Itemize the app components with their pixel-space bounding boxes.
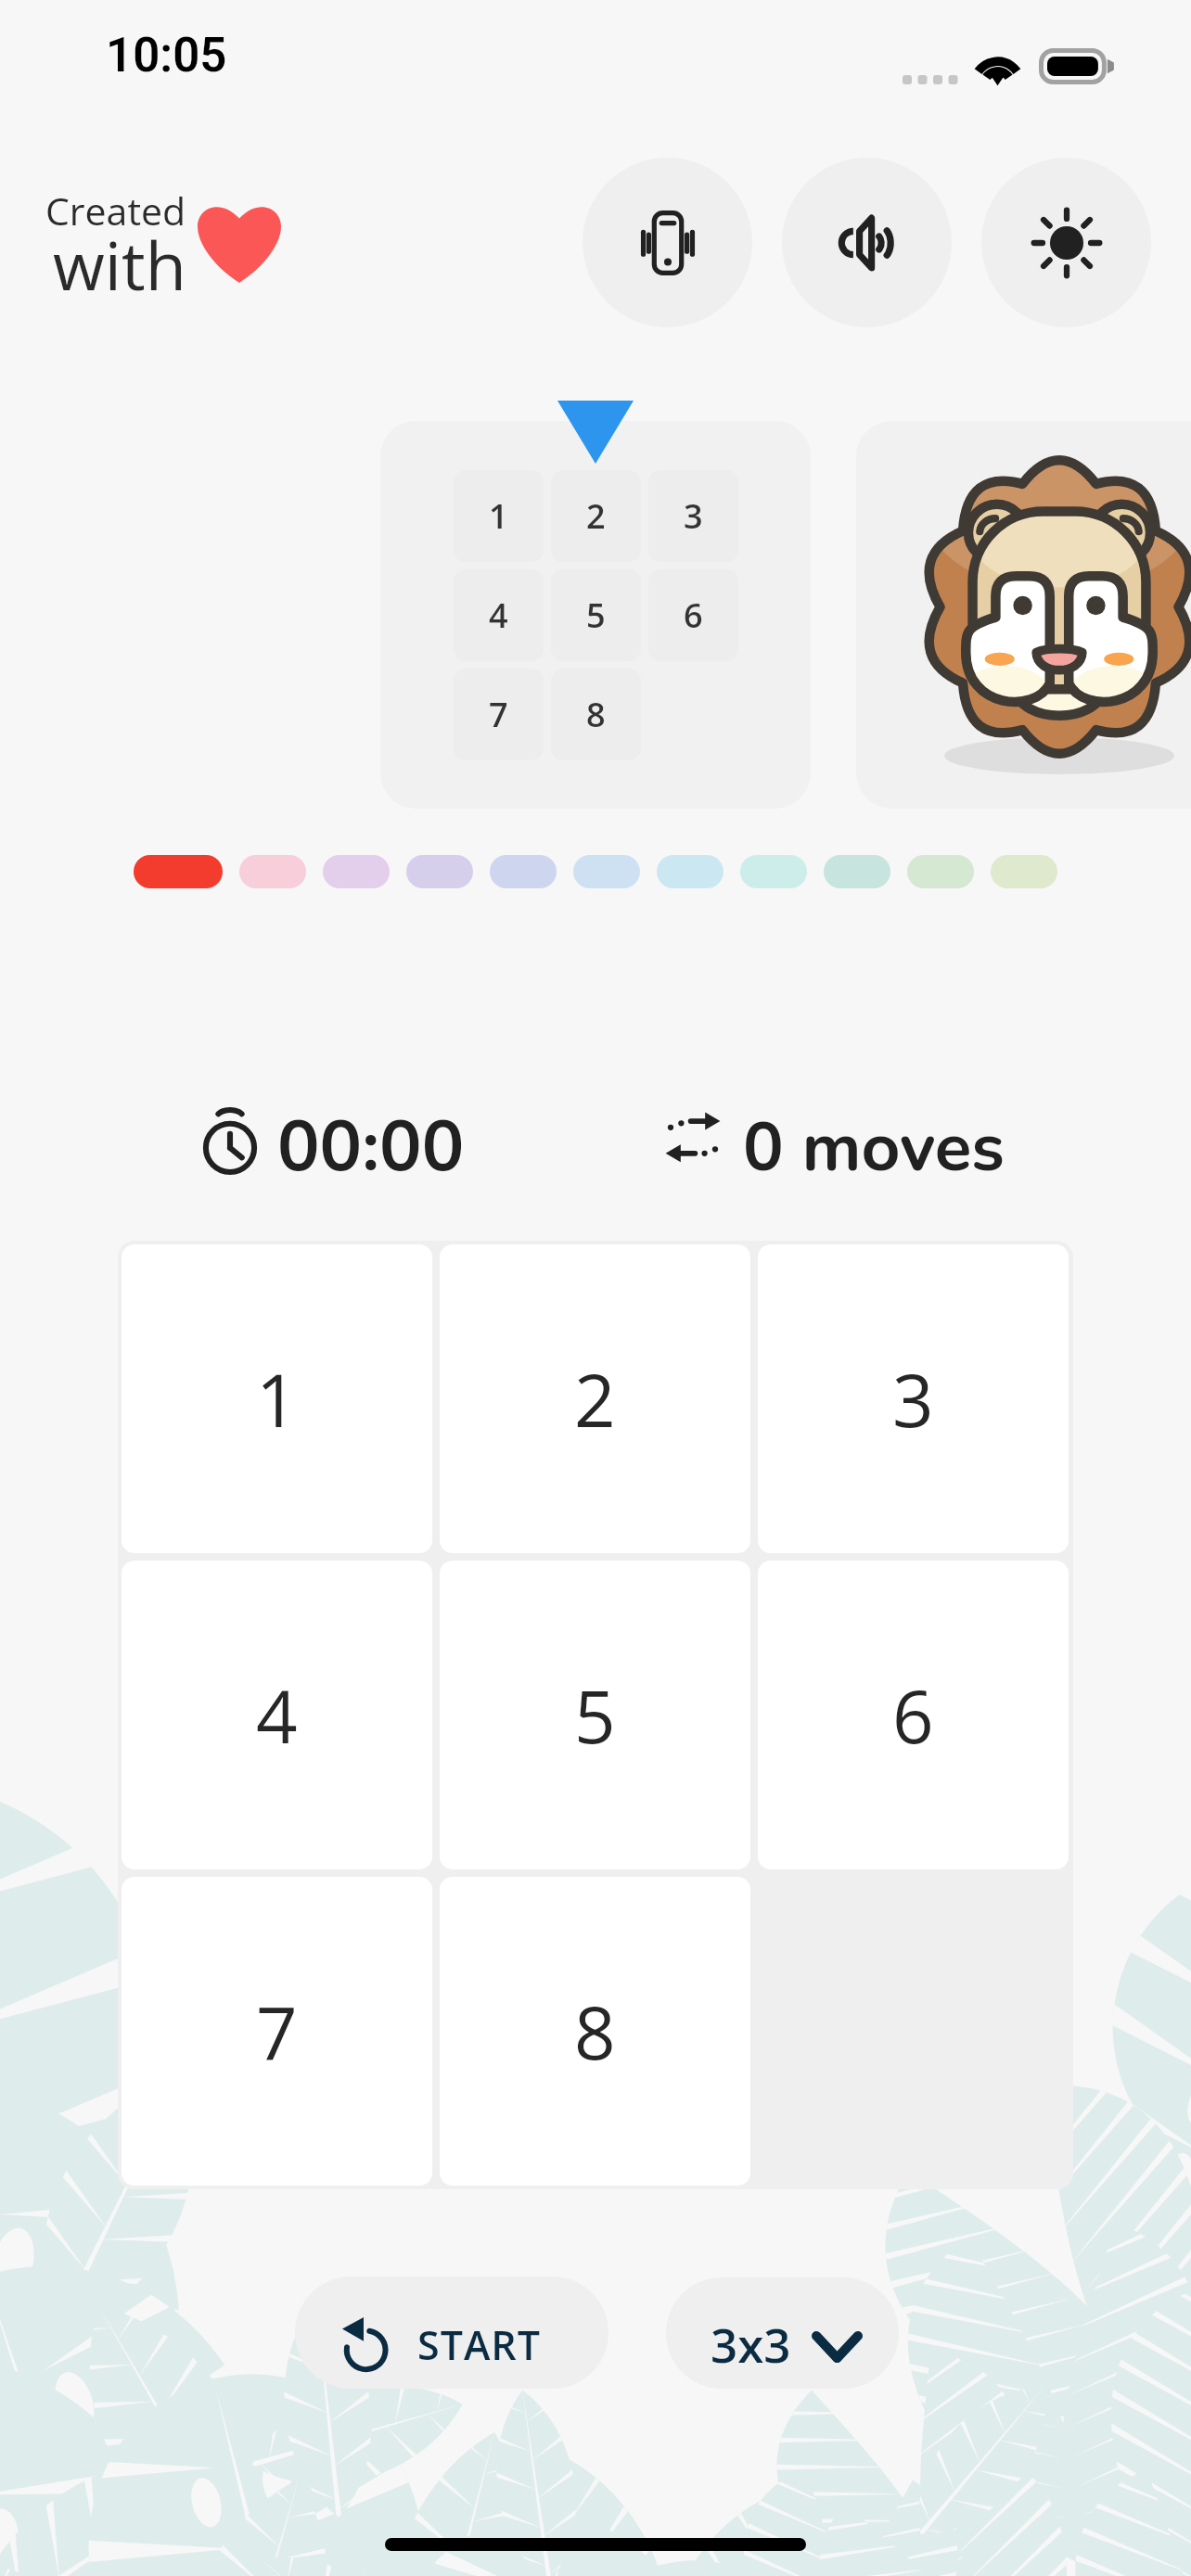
button[interactable] bbox=[907, 855, 974, 888]
button[interactable]: 7 bbox=[122, 1877, 432, 2186]
staticText: 5 bbox=[586, 593, 606, 638]
staticText: 3 bbox=[892, 1350, 934, 1448]
button[interactable]: 8 bbox=[440, 1877, 750, 2186]
button[interactable] bbox=[323, 855, 390, 888]
staticText: 3 bbox=[684, 493, 703, 539]
button[interactable] bbox=[490, 855, 557, 888]
button[interactable]: 1 bbox=[380, 421, 811, 809]
button[interactable] bbox=[406, 855, 473, 888]
staticText: 6 bbox=[684, 593, 703, 638]
button[interactable]: START bbox=[295, 2276, 608, 2389]
button[interactable]: 3 bbox=[758, 1244, 1069, 1553]
staticText: 2 bbox=[586, 493, 606, 539]
button[interactable] bbox=[740, 855, 807, 888]
staticText: with bbox=[53, 219, 186, 310]
button[interactable] bbox=[657, 855, 724, 888]
staticText: 7 bbox=[256, 1983, 298, 2081]
staticText: Created bbox=[45, 185, 186, 236]
staticText: 7 bbox=[489, 692, 508, 737]
staticText: 4 bbox=[256, 1666, 298, 1765]
button[interactable] bbox=[134, 855, 223, 888]
button[interactable]: 3x3 bbox=[666, 2277, 899, 2389]
staticText: 10:05 bbox=[106, 28, 227, 83]
button[interactable]: Sound bbox=[782, 158, 952, 327]
staticText: 5 bbox=[574, 1666, 616, 1765]
button[interactable]: 5 bbox=[440, 1561, 750, 1869]
staticText: 1 bbox=[256, 1350, 298, 1448]
staticText: 1 bbox=[489, 493, 508, 539]
staticText: 2 bbox=[574, 1350, 616, 1448]
button[interactable] bbox=[824, 855, 890, 888]
button[interactable]: Brightness bbox=[981, 158, 1151, 327]
staticText: 8 bbox=[586, 692, 606, 737]
button[interactable]: 6 bbox=[758, 1561, 1069, 1869]
staticText: 8 bbox=[574, 1983, 616, 2081]
button[interactable] bbox=[573, 855, 640, 888]
staticText: 00:00 bbox=[277, 1099, 465, 1195]
button[interactable]: 1 bbox=[122, 1244, 432, 1553]
staticText: 3x3 bbox=[711, 2312, 791, 2376]
button[interactable] bbox=[239, 855, 306, 888]
button[interactable]: Vibration bbox=[583, 158, 752, 327]
staticText: 0 moves bbox=[743, 1102, 1005, 1194]
staticText: 4 bbox=[489, 593, 508, 638]
button[interactable]: 2 bbox=[440, 1244, 750, 1553]
staticText: START bbox=[417, 2317, 542, 2372]
staticText: 6 bbox=[892, 1666, 934, 1765]
button[interactable] bbox=[991, 855, 1057, 888]
button[interactable] bbox=[856, 421, 1191, 809]
button[interactable]: 4 bbox=[122, 1561, 432, 1869]
